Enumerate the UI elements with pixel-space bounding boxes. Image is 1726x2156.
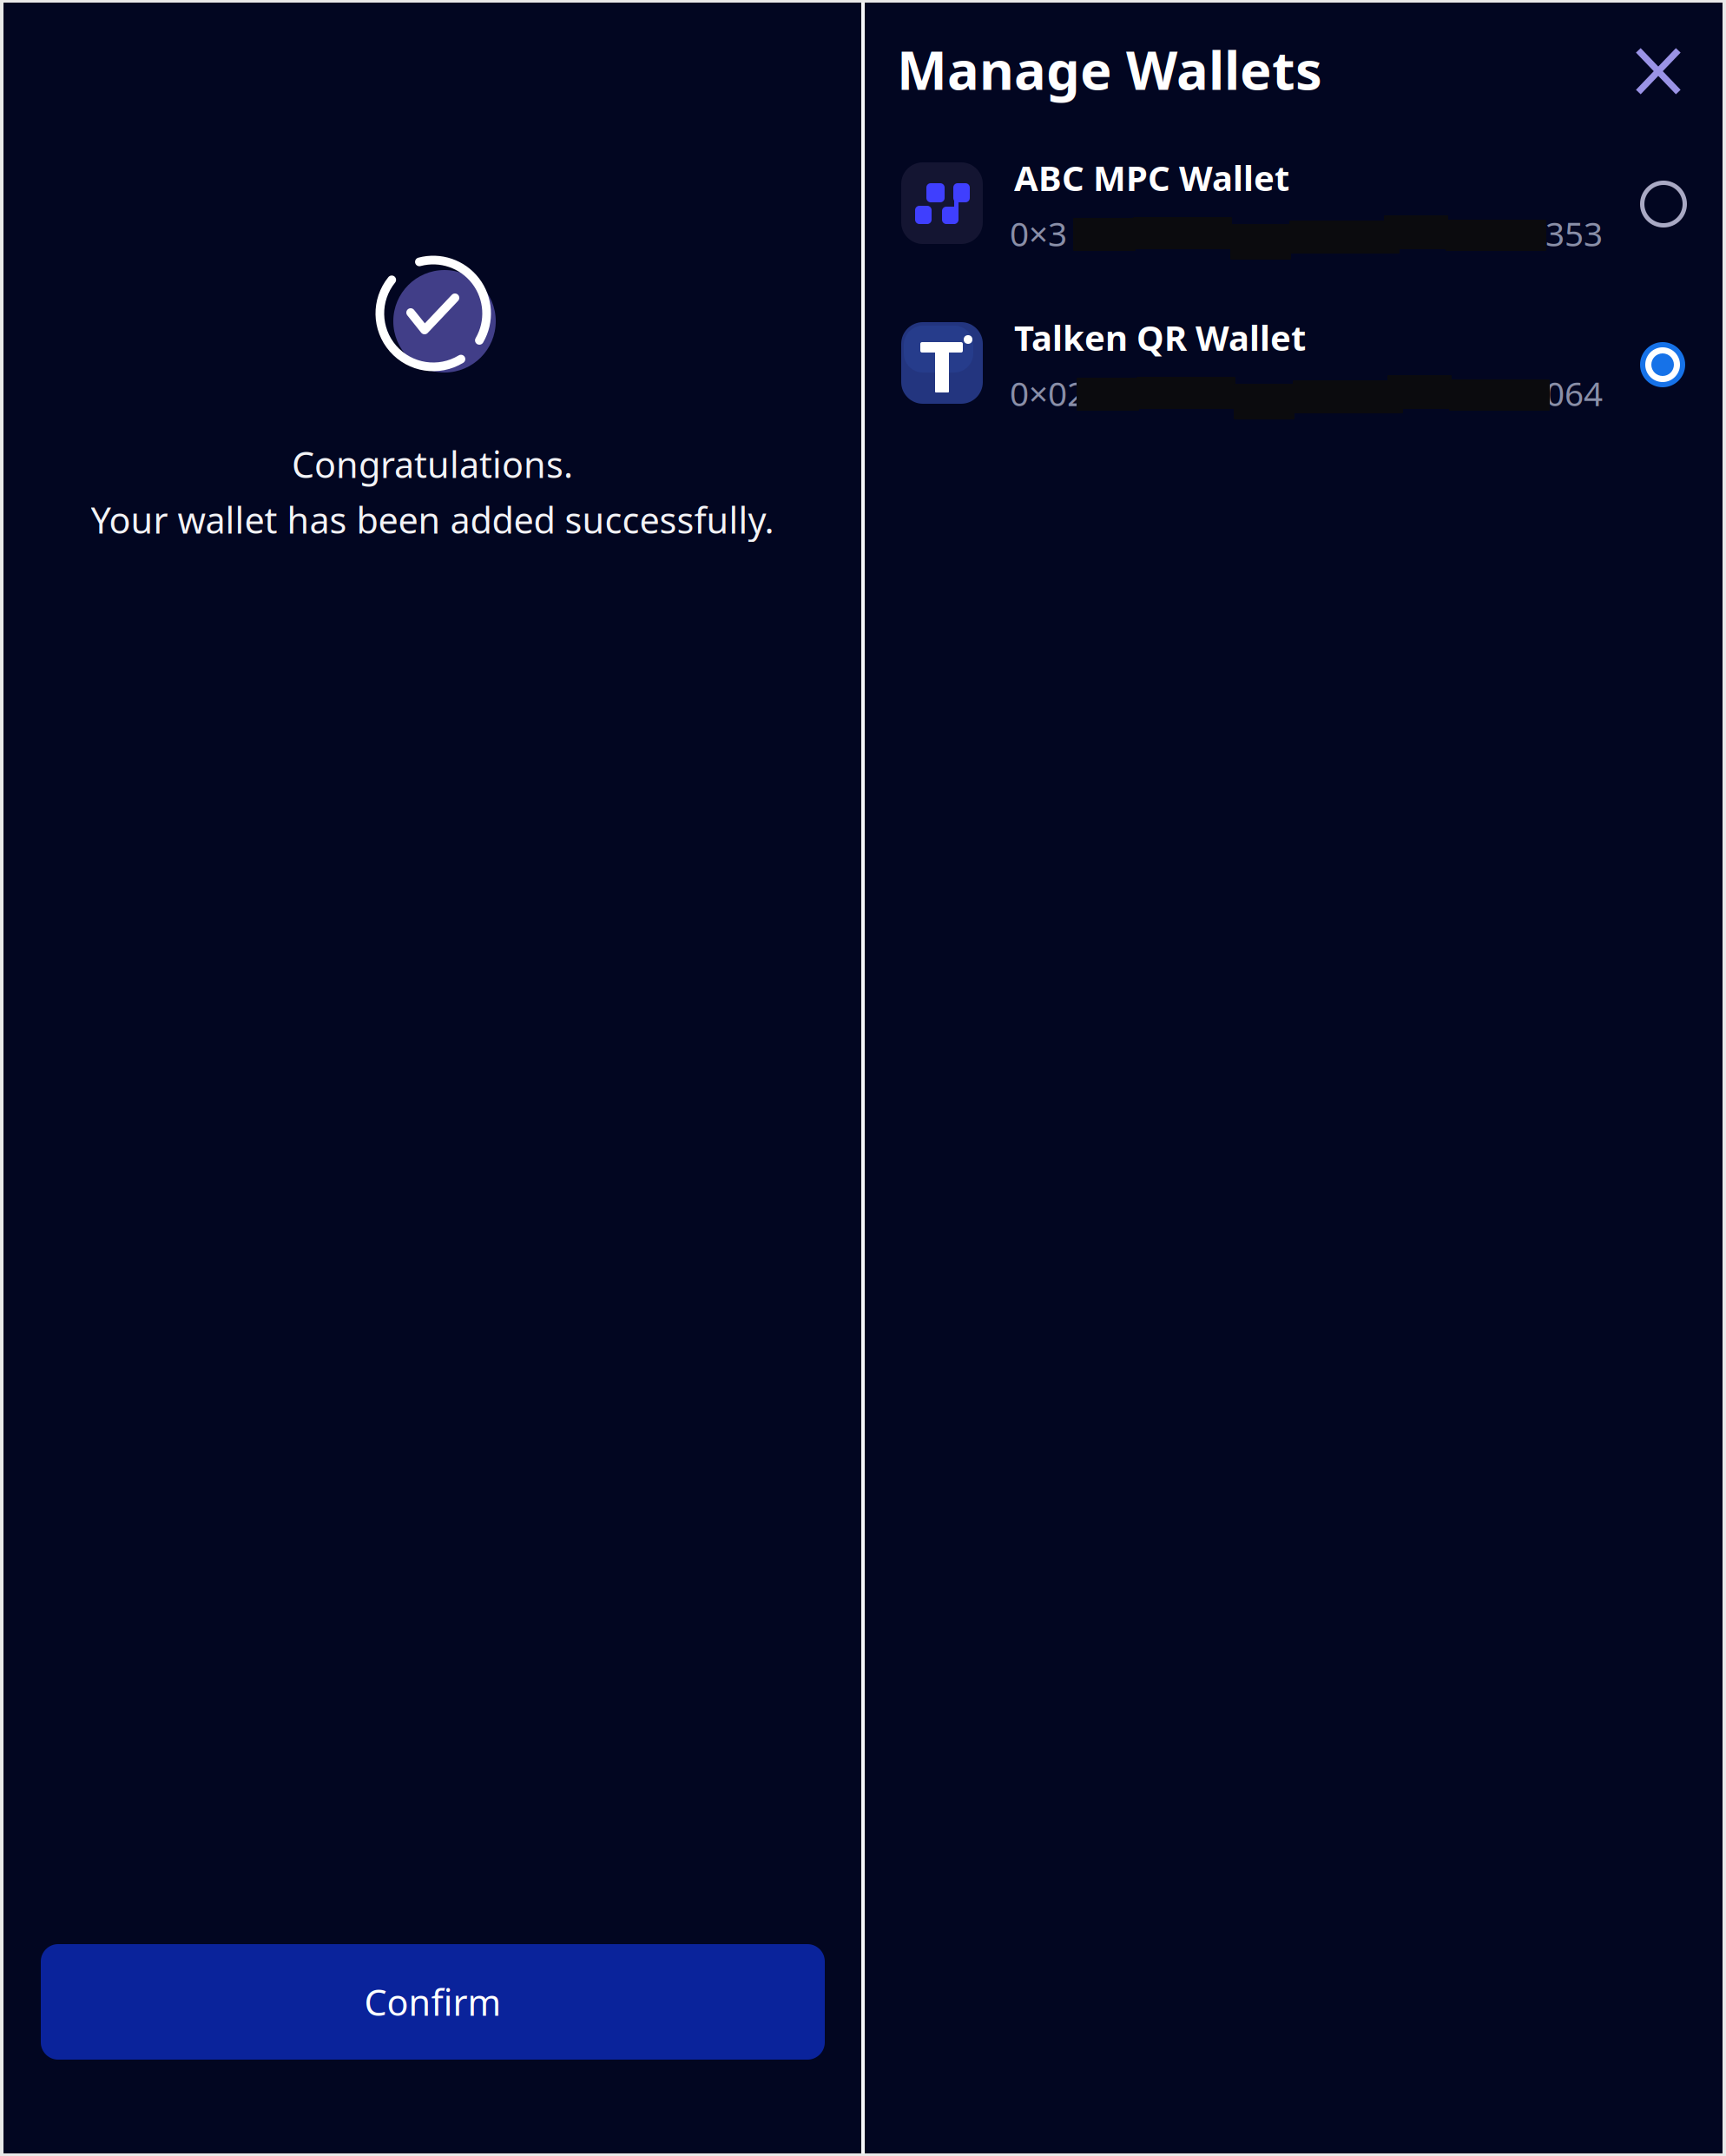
button[interactable]: Close bbox=[1617, 30, 1697, 110]
staticText: Manage Wallets bbox=[897, 34, 1322, 105]
staticText: Congratulations. bbox=[292, 440, 573, 488]
staticText: 353 bbox=[1545, 211, 1603, 256]
staticText: Confirm bbox=[364, 1978, 501, 2026]
staticText: 064 bbox=[1545, 371, 1603, 415]
button[interactable]: Talken QR Wallet bbox=[901, 322, 1688, 404]
staticText: Talken QR Wallet bbox=[1014, 314, 1306, 360]
staticText: 0×02 bbox=[1010, 371, 1086, 415]
button[interactable]: ABC MPC Wallet bbox=[901, 162, 1688, 244]
staticText: Your wallet has been added successfully. bbox=[91, 496, 774, 543]
button[interactable]: Confirm bbox=[41, 1944, 825, 2060]
staticText: ABC MPC Wallet bbox=[1014, 155, 1289, 201]
staticText: 0×3 bbox=[1010, 211, 1067, 256]
